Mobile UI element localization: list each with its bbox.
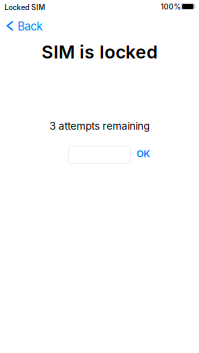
staticText: OK (136, 148, 150, 159)
staticText: SIM is locked (41, 41, 157, 63)
staticText: Locked SIM (4, 3, 45, 12)
button[interactable]: OK (130, 145, 156, 162)
staticText: Back (18, 19, 43, 33)
staticText: 100% (161, 3, 181, 11)
staticText: 3 attempts remaining (49, 120, 149, 132)
button[interactable]: Back (0, 15, 49, 37)
